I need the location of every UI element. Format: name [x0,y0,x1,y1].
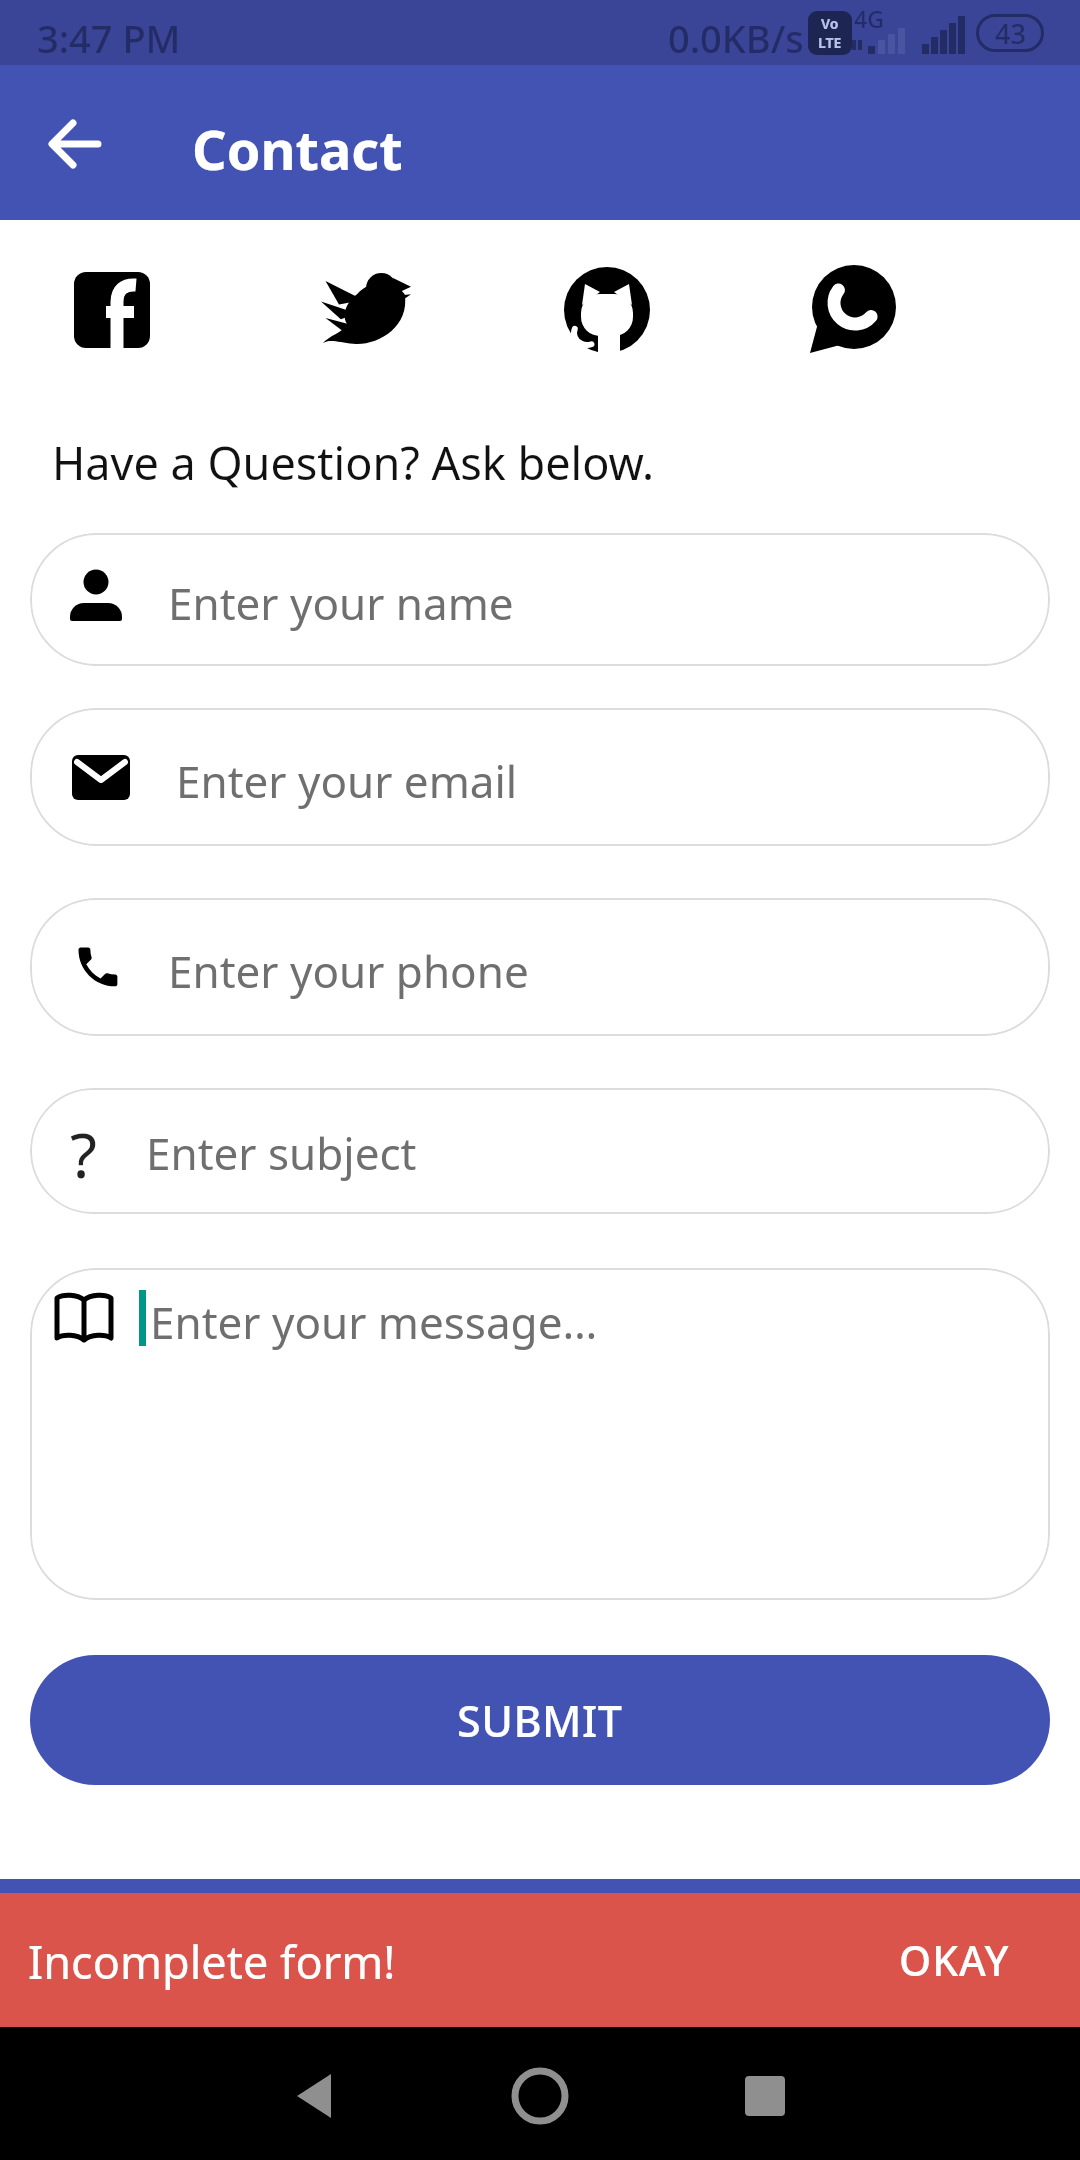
button[interactable]: OKAY [899,1932,1010,1988]
button[interactable]: Enter your message… [30,1268,1050,1600]
button[interactable] [511,2067,569,2125]
staticText: OKAY [899,1932,1010,1988]
staticText: Enter your name [168,573,514,633]
staticText: Enter subject [146,1123,417,1183]
staticText: Vo [821,14,839,33]
button[interactable] [293,2074,337,2118]
button[interactable] [321,272,411,348]
button[interactable]: Enter your name [30,533,1050,666]
staticText: 43 [995,15,1026,52]
staticText: Enter your email [176,751,518,811]
button[interactable] [74,272,150,348]
staticText: 3:47 PM [37,12,181,64]
button[interactable] [50,119,100,169]
button[interactable]: Enter your email [30,708,1050,846]
staticText: Have a Question? Ask below. [52,432,655,493]
staticText: Contact [192,112,403,186]
staticText: SUBMIT [457,1691,623,1750]
staticText: ? [70,1112,97,1196]
button[interactable] [808,265,896,355]
button[interactable]: ? [30,1088,1050,1214]
staticText: 4G [854,3,884,34]
staticText: Enter your message… [150,1292,598,1352]
staticText: Enter your phone [168,941,529,1001]
staticText: 0.0KB/s [668,12,804,64]
button[interactable]: Enter your phone [30,898,1050,1036]
button[interactable]: SUBMIT [30,1655,1050,1785]
button[interactable] [745,2076,785,2116]
staticText: LTE [818,33,842,52]
button[interactable] [564,267,650,353]
staticText: Incomplete form! [28,1931,396,1992]
